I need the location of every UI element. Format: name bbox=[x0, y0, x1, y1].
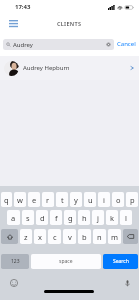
staticText: Search bbox=[113, 258, 129, 265]
button[interactable]: p bbox=[126, 192, 138, 207]
staticText: q bbox=[4, 195, 9, 205]
staticText: space bbox=[59, 258, 73, 265]
button[interactable]: Backspace bbox=[123, 229, 138, 244]
button[interactable]: o bbox=[112, 192, 124, 207]
staticText: y bbox=[74, 195, 78, 205]
staticText: d bbox=[40, 213, 45, 223]
staticText: c bbox=[53, 232, 57, 242]
staticText: j bbox=[97, 213, 99, 223]
button[interactable]: Search bbox=[103, 254, 138, 269]
button[interactable]: h bbox=[78, 210, 90, 225]
button[interactable]: l bbox=[120, 210, 132, 225]
button[interactable]: Menu bbox=[6, 17, 20, 30]
staticText: o bbox=[116, 195, 121, 205]
button[interactable]: q bbox=[1, 192, 12, 207]
button[interactable]: Emoji bbox=[9, 278, 19, 288]
staticText: h bbox=[82, 213, 87, 223]
button[interactable]: n bbox=[93, 229, 106, 244]
staticText: i bbox=[103, 195, 105, 205]
button[interactable]: j bbox=[92, 210, 104, 225]
button[interactable]: Dictation bbox=[122, 278, 132, 288]
button[interactable]: w bbox=[14, 192, 26, 207]
staticText: m bbox=[111, 232, 119, 242]
staticText: Audrey bbox=[13, 41, 33, 49]
staticText: t bbox=[61, 195, 64, 205]
button[interactable]: i bbox=[98, 192, 110, 207]
staticText: k bbox=[110, 213, 115, 223]
staticText: Cancel bbox=[117, 40, 136, 48]
button[interactable]: u bbox=[84, 192, 96, 207]
staticText: l bbox=[125, 213, 127, 223]
button[interactable]: e bbox=[28, 192, 40, 207]
button[interactable]: Audrey bbox=[6, 39, 111, 50]
staticText: w bbox=[17, 195, 23, 205]
button[interactable]: v bbox=[63, 229, 76, 244]
button[interactable]: y bbox=[70, 192, 82, 207]
staticText: g bbox=[68, 213, 73, 223]
button[interactable]: x bbox=[34, 229, 46, 244]
button[interactable]: Shift bbox=[1, 229, 18, 244]
staticText: Audrey Hepburn bbox=[23, 64, 70, 72]
staticText: x bbox=[38, 232, 42, 242]
button[interactable]: s bbox=[22, 210, 34, 225]
staticText: a bbox=[11, 213, 16, 223]
button[interactable]: k bbox=[106, 210, 118, 225]
staticText: z bbox=[24, 232, 28, 242]
button[interactable]: t bbox=[56, 192, 68, 207]
button[interactable]: a bbox=[7, 210, 20, 225]
staticText: 123 bbox=[11, 258, 20, 265]
staticText: n bbox=[97, 232, 102, 242]
button[interactable]: Cancel bbox=[116, 38, 137, 50]
button[interactable]: Audrey Hepburn bbox=[0, 56, 139, 80]
staticText: b bbox=[82, 232, 87, 242]
button[interactable]: g bbox=[64, 210, 76, 225]
staticText: v bbox=[68, 232, 72, 242]
staticText: p bbox=[130, 195, 135, 205]
staticText: CLIENTS bbox=[57, 20, 82, 27]
staticText: r bbox=[46, 195, 50, 205]
staticText: 17:43 bbox=[15, 3, 31, 11]
button[interactable]: m bbox=[108, 229, 121, 244]
button[interactable]: z bbox=[20, 229, 32, 244]
staticText: u bbox=[88, 195, 93, 205]
button[interactable]: b bbox=[78, 229, 91, 244]
button[interactable]: 123 bbox=[1, 254, 29, 269]
staticText: s bbox=[26, 213, 30, 223]
button[interactable]: r bbox=[42, 192, 54, 207]
staticText: e bbox=[32, 195, 37, 205]
staticText: f bbox=[55, 213, 58, 223]
button[interactable]: d bbox=[36, 210, 48, 225]
button[interactable]: f bbox=[50, 210, 62, 225]
button[interactable]: c bbox=[48, 229, 61, 244]
button[interactable]: space bbox=[31, 254, 101, 269]
